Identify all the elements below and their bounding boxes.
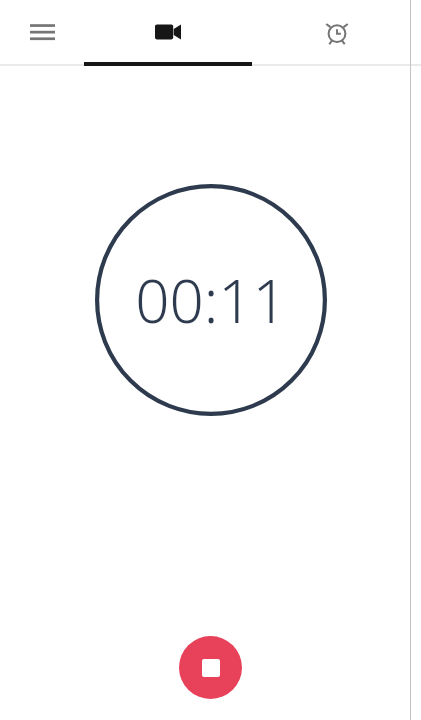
button[interactable]: Alarm tab [252,0,421,64]
button[interactable]: Video recorder tab [84,0,252,64]
button[interactable]: Menu [0,0,84,64]
button[interactable]: Stop recording [179,636,242,699]
staticText: 00:11 [135,259,287,341]
